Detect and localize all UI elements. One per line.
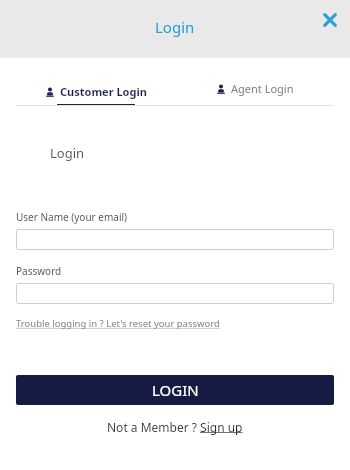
staticText: LOGIN — [152, 380, 199, 400]
staticText: Agent Login — [231, 81, 294, 96]
button[interactable]: Text input field — [16, 283, 334, 304]
staticText: Customer Login — [60, 84, 147, 99]
button[interactable]: Trouble logging in ? Let's reset your pa… — [16, 317, 220, 330]
staticText: Login — [155, 17, 195, 37]
button[interactable]: Customer Login — [16, 84, 175, 106]
button[interactable]: Login — [147, 13, 203, 41]
staticText: Login — [50, 144, 85, 162]
staticText: Not a Member ? Sign up — [107, 419, 243, 435]
button[interactable]: Agent Login — [175, 84, 334, 99]
staticText: Password — [16, 264, 62, 278]
button[interactable]: Text input field — [16, 229, 334, 250]
staticText: User Name (your email) — [16, 210, 128, 224]
staticText: Trouble logging in ? Let's reset your pa… — [16, 317, 220, 330]
button[interactable]: Not a Member ? Sign up — [103, 415, 247, 439]
button[interactable]: Close — [316, 6, 344, 34]
button[interactable]: LOGIN — [16, 375, 334, 405]
